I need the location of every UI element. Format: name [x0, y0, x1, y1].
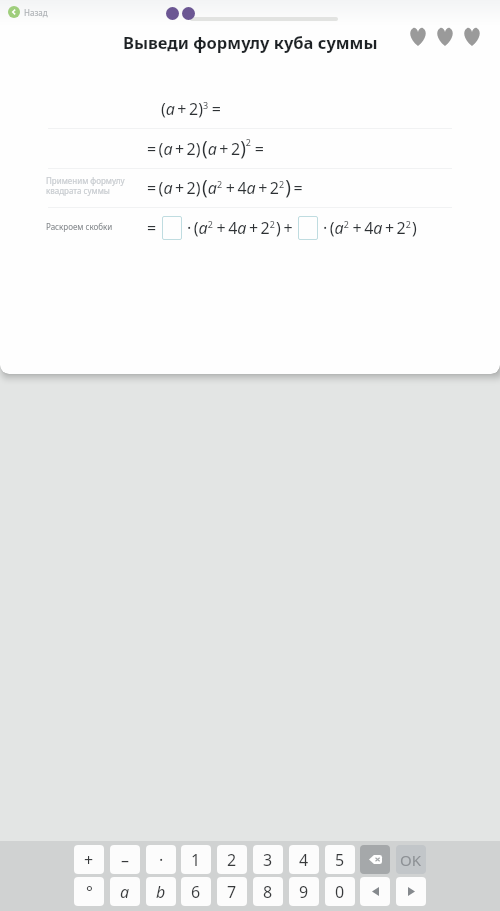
staticText: 7 [227, 881, 237, 903]
button[interactable] [298, 216, 318, 240]
staticText: Назад [24, 7, 48, 18]
staticText: 5 [335, 849, 345, 871]
staticText: 4 [299, 849, 309, 871]
staticText: · (a2 + 4a + 22 ) [323, 217, 417, 239]
button[interactable]: 0 [325, 877, 355, 906]
staticText: 2 [227, 849, 237, 871]
button[interactable]: Backspace [360, 845, 390, 874]
staticText: 0 [335, 881, 345, 903]
button[interactable]: 4 [289, 845, 319, 874]
staticText: ° [86, 881, 93, 903]
button[interactable] [162, 216, 182, 240]
button[interactable]: + [74, 845, 104, 874]
button[interactable]: Next [396, 877, 426, 906]
staticText: OK [400, 850, 422, 870]
button[interactable]: 7 [217, 877, 247, 906]
button[interactable]: b [146, 877, 176, 906]
staticText: · [159, 849, 164, 871]
staticText: (a + 2)3 = [161, 98, 222, 120]
staticText: Выведи формулу куба суммы [123, 31, 378, 53]
button[interactable]: 6 [181, 877, 211, 906]
staticText: 1 [191, 849, 201, 871]
button[interactable]: Previous [360, 877, 390, 906]
button[interactable]: · [146, 845, 176, 874]
staticText: 9 [299, 881, 309, 903]
button[interactable]: 8 [253, 877, 283, 906]
button[interactable]: Назад [8, 6, 48, 18]
staticText: = (a + 2) (a + 2)2 = [147, 135, 264, 161]
button[interactable]: OK [396, 845, 426, 874]
button[interactable]: 1 [181, 845, 211, 874]
button[interactable]: a [110, 877, 140, 906]
staticText: 3 [263, 849, 273, 871]
staticText: 8 [263, 881, 273, 903]
button[interactable]: ° [74, 877, 104, 906]
button[interactable]: 5 [325, 845, 355, 874]
staticText: = [147, 217, 157, 239]
button[interactable]: 2 [217, 845, 247, 874]
staticText: + [84, 849, 94, 871]
button[interactable]: 9 [289, 877, 319, 906]
staticText: 6 [191, 881, 201, 903]
button[interactable]: – [110, 845, 140, 874]
staticText: b [156, 881, 166, 903]
staticText: = (a + 2) (a2 + 4a + 22 ) = [147, 174, 303, 200]
staticText: a [120, 881, 130, 903]
staticText: – [121, 849, 130, 871]
staticText: Раскроем скобки [46, 221, 113, 232]
staticText: · (a2 + 4a + 22 ) + [187, 217, 293, 239]
button[interactable]: 3 [253, 845, 283, 874]
staticText: Применим формулу квадрата суммы [46, 175, 130, 196]
